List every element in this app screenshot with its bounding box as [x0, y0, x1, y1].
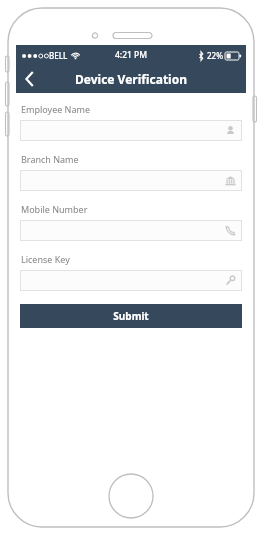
button[interactable]: Branch Name: [20, 170, 242, 191]
button[interactable]: License Key: [20, 270, 242, 291]
button[interactable]: Back: [16, 65, 44, 93]
button[interactable]: Submit: [20, 304, 242, 328]
staticText: BELL: [49, 50, 68, 61]
button[interactable]: Mobile Number: [20, 220, 242, 241]
staticText: 4:21 PM: [115, 49, 148, 61]
staticText: License Key: [21, 253, 70, 265]
staticText: Submit: [113, 309, 149, 323]
staticText: Branch Name: [21, 153, 79, 165]
button[interactable]: Employee Name: [20, 120, 242, 141]
staticText: Device Verification: [75, 71, 187, 87]
staticText: Employee Name: [21, 103, 91, 115]
staticText: 22%: [207, 50, 223, 61]
staticText: Mobile Number: [21, 203, 88, 215]
